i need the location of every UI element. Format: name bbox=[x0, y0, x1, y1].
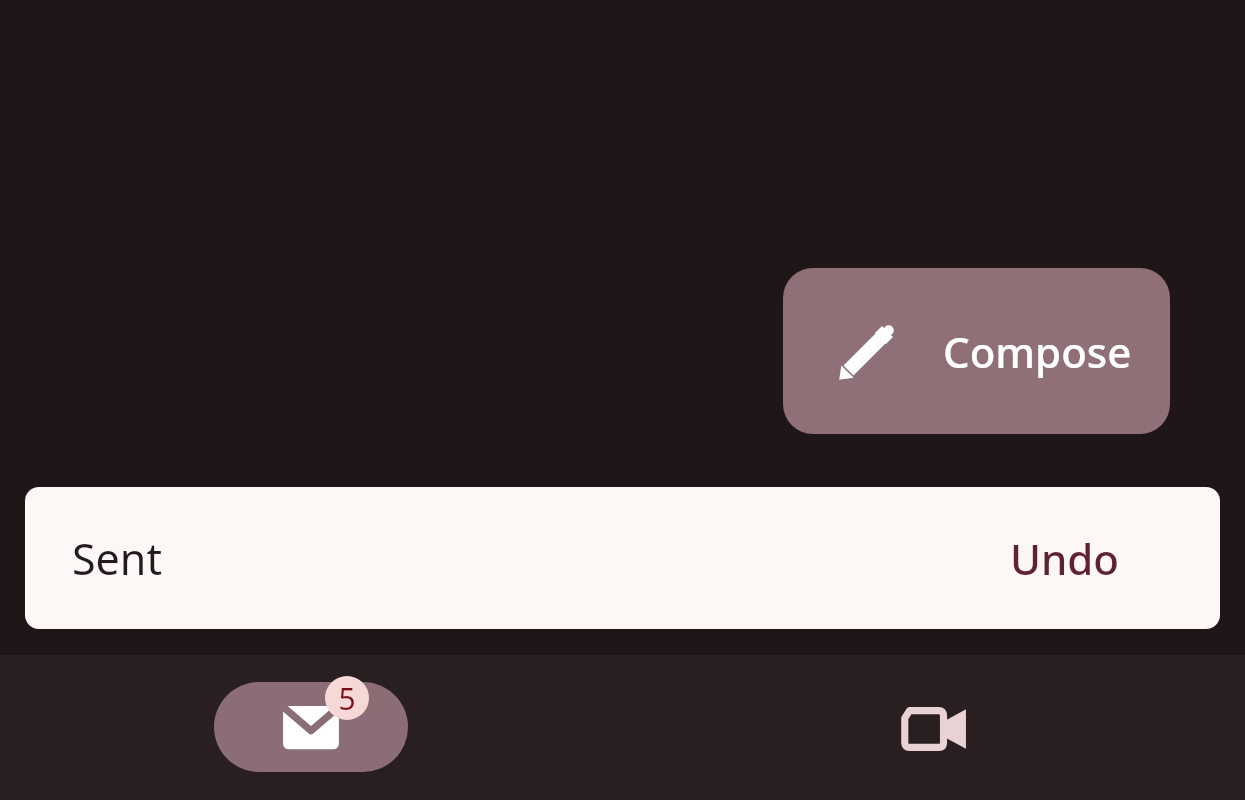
staticText: 5 bbox=[338, 678, 356, 719]
button[interactable]: Video call bbox=[622, 655, 1245, 800]
staticText: Sent bbox=[72, 529, 162, 588]
staticText: Compose bbox=[943, 323, 1132, 380]
button[interactable]: Compose bbox=[783, 268, 1170, 434]
staticText: Undo bbox=[1010, 530, 1120, 587]
button[interactable]: Undo bbox=[992, 518, 1138, 599]
button[interactable]: Mail, 5 unread bbox=[0, 655, 622, 800]
